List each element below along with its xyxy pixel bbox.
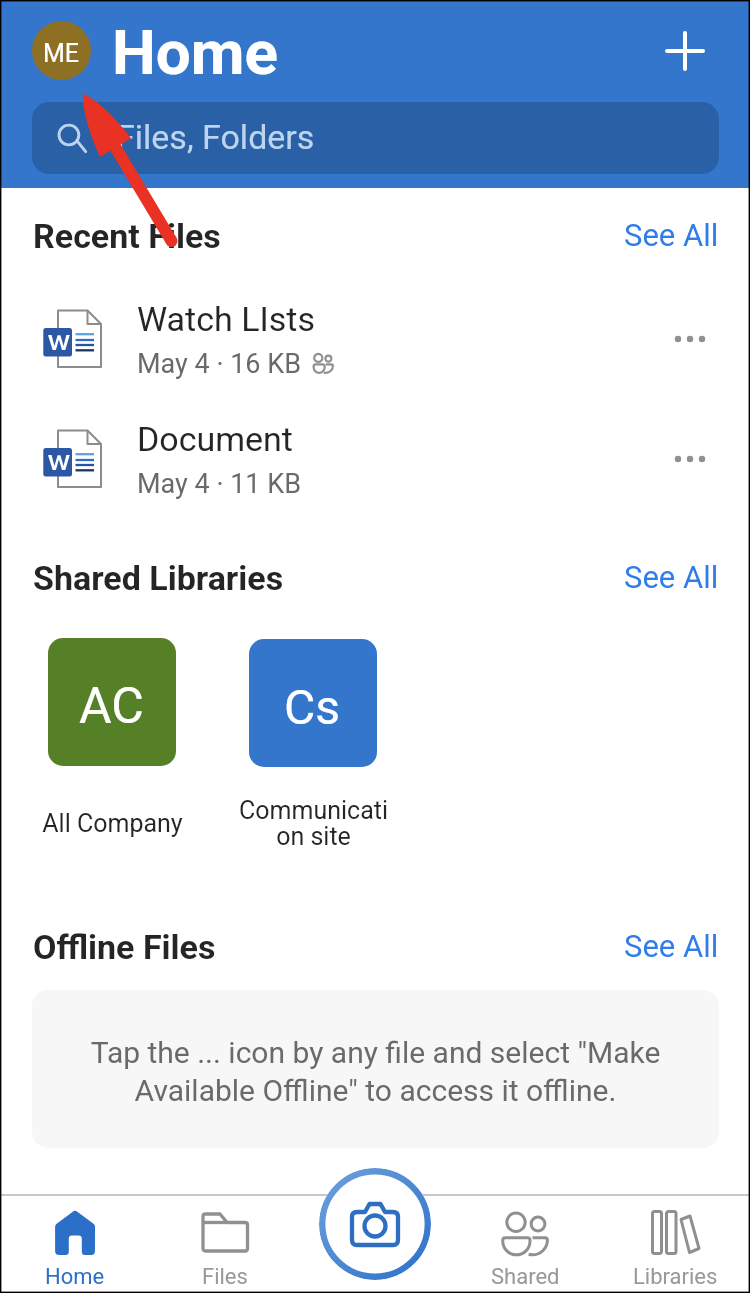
button[interactable]: Account bbox=[32, 21, 91, 80]
staticText: Home bbox=[112, 16, 278, 89]
staticText: Document bbox=[137, 419, 293, 459]
button[interactable]: Document bbox=[0, 399, 750, 519]
staticText: Files bbox=[202, 1264, 248, 1290]
staticText: See All bbox=[624, 559, 719, 595]
button[interactable]: Files, Folders bbox=[32, 102, 719, 174]
staticText: See All bbox=[624, 928, 719, 964]
staticText: All Company bbox=[42, 809, 183, 838]
staticText: AC bbox=[79, 677, 144, 736]
button[interactable]: Camera bbox=[319, 1168, 431, 1280]
button[interactable]: AC bbox=[48, 638, 176, 766]
button[interactable]: Shared Libraries bbox=[33, 558, 284, 598]
button[interactable]: Recent Files bbox=[33, 216, 221, 256]
staticText: See All bbox=[624, 217, 719, 253]
button[interactable]: More options bbox=[660, 309, 720, 369]
staticText: Home bbox=[45, 1264, 105, 1290]
button[interactable]: Offline Files bbox=[33, 927, 216, 967]
button[interactable]: Home bbox=[0, 1196, 150, 1293]
staticText: Shared Libraries bbox=[33, 558, 284, 598]
button[interactable]: Cs bbox=[249, 639, 377, 767]
staticText: Offline Files bbox=[33, 927, 216, 967]
staticText: Files, Folders bbox=[116, 117, 315, 157]
button[interactable]: More options bbox=[660, 429, 720, 489]
button[interactable]: See All bbox=[624, 559, 719, 595]
staticText: Communicati on site bbox=[239, 796, 388, 852]
staticText: Watch LIsts bbox=[137, 299, 315, 339]
staticText: Shared bbox=[491, 1264, 560, 1290]
staticText: Cs bbox=[284, 679, 341, 735]
staticText: May 4 · 16 KB bbox=[137, 348, 301, 380]
button[interactable]: Shared bbox=[450, 1196, 600, 1293]
button[interactable]: Add bbox=[655, 21, 715, 81]
staticText: ME bbox=[43, 39, 80, 68]
staticText: Tap the ... icon by any file and select … bbox=[83, 1035, 668, 1109]
staticText: Recent Files bbox=[33, 216, 221, 256]
button[interactable]: See All bbox=[624, 217, 719, 253]
button[interactable]: Libraries bbox=[600, 1196, 750, 1293]
staticText: Libraries bbox=[633, 1264, 718, 1290]
button[interactable]: Watch LIsts bbox=[0, 279, 750, 399]
staticText: May 4 · 11 KB bbox=[137, 468, 301, 500]
button[interactable]: Files bbox=[150, 1196, 300, 1293]
button[interactable]: See All bbox=[624, 928, 719, 964]
